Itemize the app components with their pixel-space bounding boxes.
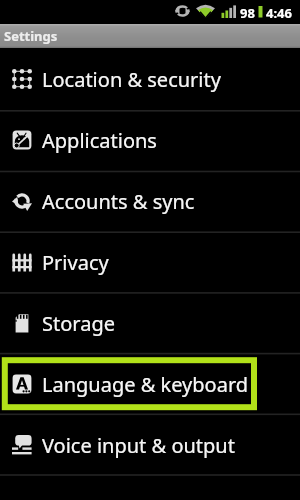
button[interactable]: Language & keyboard [0,354,300,415]
button[interactable]: Storage [0,293,300,354]
staticText: Accounts & sync [42,188,195,215]
staticText: Location & security [42,66,221,93]
staticText: Privacy [42,249,109,276]
button[interactable]: Voice input & output [0,415,300,476]
staticText: Language & keyboard [42,371,249,398]
staticText: 4:46 [266,4,292,22]
button[interactable]: Accounts & sync [0,171,300,232]
staticText: Voice input & output [42,432,235,459]
staticText: 98 [240,4,255,22]
button[interactable]: Applications [0,110,300,171]
staticText: Applications [42,127,157,154]
button[interactable]: Location & security [0,49,300,110]
staticText: Storage [42,310,115,337]
staticText: Settings [4,27,58,45]
button[interactable]: Privacy [0,232,300,293]
